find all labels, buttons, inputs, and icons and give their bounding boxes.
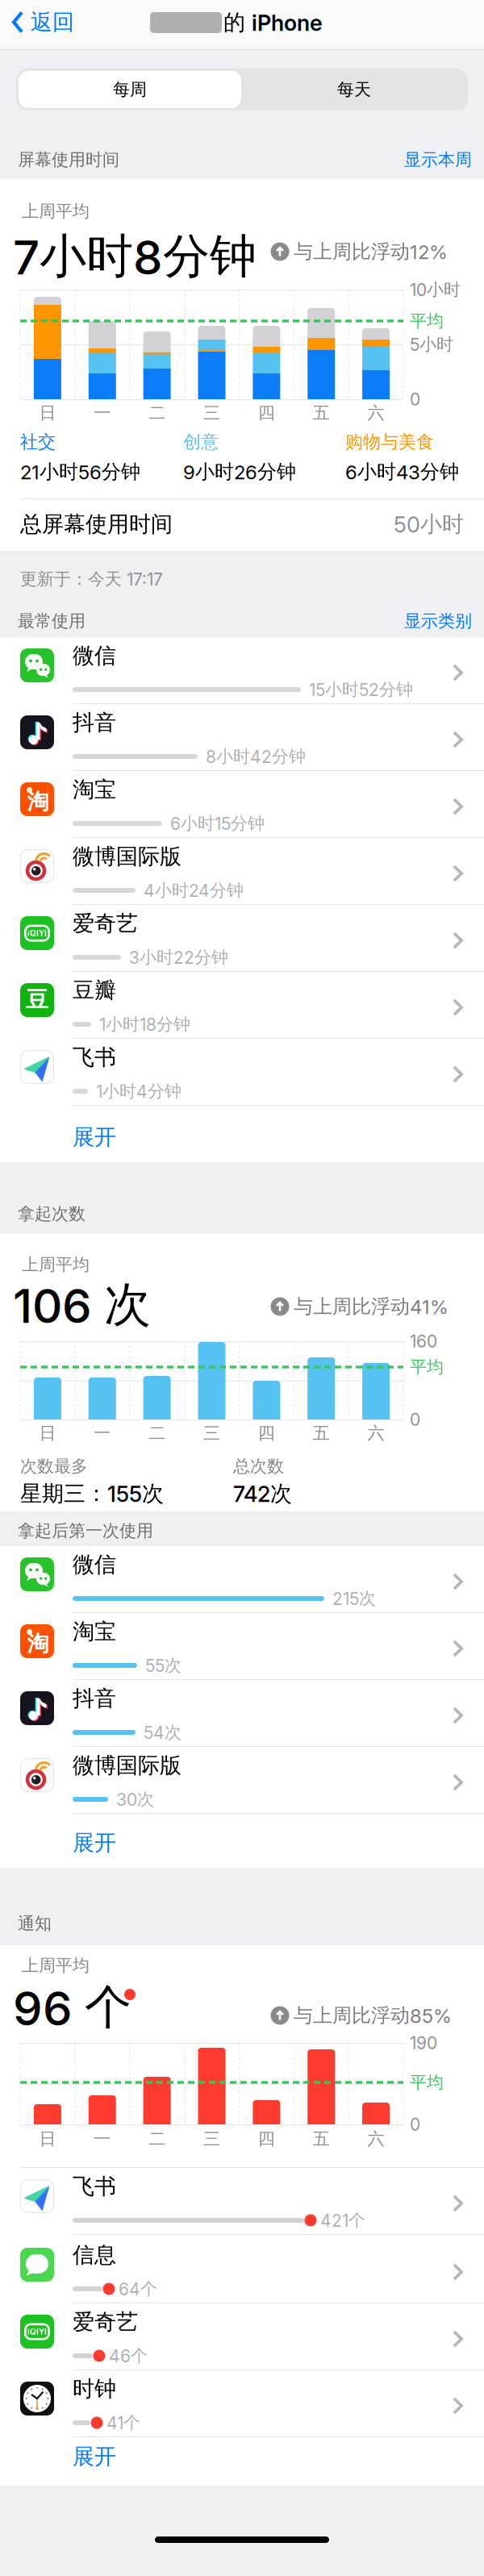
staticText: 6小时15分钟 bbox=[170, 813, 265, 834]
staticText: 日 bbox=[39, 1423, 56, 1443]
staticText: 屏幕使用时间 bbox=[18, 150, 119, 170]
staticText: 0 bbox=[410, 1410, 420, 1429]
staticText: 六 bbox=[368, 403, 384, 423]
button[interactable]: 展开 bbox=[0, 2437, 484, 2486]
staticText: 0 bbox=[410, 389, 420, 409]
button[interactable]: 显示本周 bbox=[371, 149, 472, 170]
staticText: 四 bbox=[258, 1423, 275, 1443]
staticText: 爱奇艺 bbox=[73, 2309, 138, 2335]
staticText: 时钟 bbox=[73, 2376, 116, 2402]
staticText: 二 bbox=[149, 1423, 165, 1443]
staticText: 10小时 bbox=[410, 279, 461, 300]
staticText: 上周平均 bbox=[22, 1254, 90, 1275]
staticText: 4小时24分钟 bbox=[144, 880, 244, 900]
staticText: 106 次 bbox=[13, 1277, 151, 1333]
staticText: 抖音 bbox=[73, 710, 116, 736]
staticText: 二 bbox=[149, 403, 165, 423]
staticText: 微信 bbox=[73, 643, 116, 669]
staticText: 淘 bbox=[27, 1631, 49, 1657]
staticText: 一 bbox=[94, 2129, 111, 2149]
staticText: 日 bbox=[39, 2129, 56, 2149]
staticText: 55次 bbox=[145, 1655, 181, 1676]
staticText: 每周 bbox=[113, 79, 147, 100]
staticText: 二 bbox=[149, 2129, 165, 2149]
staticText: iQIYI bbox=[27, 929, 47, 938]
staticText: 总次数 bbox=[233, 1456, 284, 1476]
staticText: 7小时8分钟 bbox=[13, 228, 257, 284]
staticText: 信息 bbox=[73, 2242, 116, 2268]
button[interactable]: 时钟 bbox=[0, 2370, 484, 2437]
staticText: 三 bbox=[203, 2129, 220, 2149]
staticText: 更新于：今天 17:17 bbox=[20, 569, 163, 589]
button[interactable]: 微博国际版 bbox=[0, 1747, 484, 1814]
button[interactable]: 飞书 bbox=[0, 2168, 484, 2235]
staticText: 与上周比浮动12% bbox=[294, 240, 448, 263]
staticText: 上周平均 bbox=[22, 1955, 90, 1976]
staticText: 豆瓣 bbox=[73, 977, 116, 1003]
staticText: 平均 bbox=[410, 311, 444, 331]
button[interactable]: 总屏幕使用时间 bbox=[0, 498, 484, 551]
staticText: 1小时18分钟 bbox=[99, 1014, 190, 1034]
staticText: 1小时4分钟 bbox=[96, 1081, 181, 1101]
button[interactable]: 抖音 bbox=[0, 704, 484, 771]
staticText: 46个 bbox=[109, 2346, 148, 2366]
staticText: 微博国际版 bbox=[73, 843, 181, 870]
staticText: 64个 bbox=[119, 2279, 157, 2299]
staticText: 四 bbox=[258, 403, 275, 423]
button[interactable]: 微信 bbox=[0, 637, 484, 704]
staticText: 三 bbox=[203, 403, 220, 423]
button[interactable]: 返回 bbox=[11, 0, 74, 47]
button[interactable]: 展开 bbox=[0, 1106, 484, 1162]
staticText: 41个 bbox=[106, 2413, 140, 2433]
staticText: 返回 bbox=[31, 9, 74, 35]
button[interactable]: 微信 bbox=[0, 1546, 484, 1613]
staticText: 21小时56分钟 bbox=[20, 460, 140, 483]
staticText: 3小时22分钟 bbox=[129, 947, 228, 967]
staticText: 最常使用 bbox=[18, 611, 86, 631]
staticText: 0 bbox=[410, 2115, 420, 2134]
button[interactable]: 每天 bbox=[243, 71, 465, 108]
button[interactable]: iQIYI bbox=[0, 2303, 484, 2370]
button[interactable]: iQIYI bbox=[0, 905, 484, 972]
staticText: 160 bbox=[410, 1331, 437, 1351]
staticText: iQIYI bbox=[27, 2327, 47, 2336]
button[interactable]: 每周 bbox=[19, 71, 241, 108]
button[interactable]: 微博国际版 bbox=[0, 838, 484, 905]
button[interactable]: 豆 bbox=[0, 972, 484, 1039]
staticText: 五 bbox=[313, 403, 330, 423]
staticText: 创意 bbox=[183, 431, 219, 453]
staticText: 15小时52分钟 bbox=[309, 679, 413, 700]
staticText: 6小时43分钟 bbox=[345, 460, 459, 483]
staticText: 三 bbox=[203, 1423, 220, 1443]
staticText: 五 bbox=[313, 2129, 330, 2149]
staticText: 日 bbox=[39, 403, 56, 423]
staticText: 显示类别 bbox=[404, 611, 472, 631]
button[interactable]: 抖音 bbox=[0, 1680, 484, 1747]
button[interactable]: 显示类别 bbox=[371, 611, 472, 631]
staticText: 微博国际版 bbox=[73, 1752, 181, 1778]
staticText: 四 bbox=[258, 2129, 275, 2149]
staticText: 爱奇艺 bbox=[73, 910, 138, 936]
staticText: 54次 bbox=[144, 1722, 181, 1742]
staticText: 与上周比浮动85% bbox=[294, 2004, 452, 2027]
button[interactable]: 淘 bbox=[0, 771, 484, 838]
staticText: 展开 bbox=[73, 1124, 116, 1150]
staticText: 30次 bbox=[116, 1789, 154, 1809]
staticText: 上周平均 bbox=[22, 201, 90, 221]
staticText: 总屏幕使用时间 bbox=[20, 511, 173, 537]
staticText: 每天 bbox=[337, 79, 371, 100]
button[interactable]: 信息 bbox=[0, 2236, 484, 2303]
staticText: 5小时 bbox=[410, 334, 453, 354]
staticText: 次数最多 bbox=[20, 1456, 88, 1476]
staticText: 飞书 bbox=[73, 1044, 116, 1070]
staticText: 微信 bbox=[73, 1552, 116, 1578]
staticText: 421个 bbox=[320, 2210, 365, 2230]
staticText: 平均 bbox=[410, 1357, 444, 1377]
staticText: 742次 bbox=[233, 1481, 292, 1507]
staticText: 215次 bbox=[332, 1588, 376, 1609]
button[interactable]: 飞书 bbox=[0, 1039, 484, 1106]
staticText: 50小时 bbox=[394, 511, 464, 537]
button[interactable]: 淘 bbox=[0, 1613, 484, 1680]
staticText: 豆 bbox=[26, 987, 48, 1014]
button[interactable]: 展开 bbox=[0, 1814, 484, 1868]
